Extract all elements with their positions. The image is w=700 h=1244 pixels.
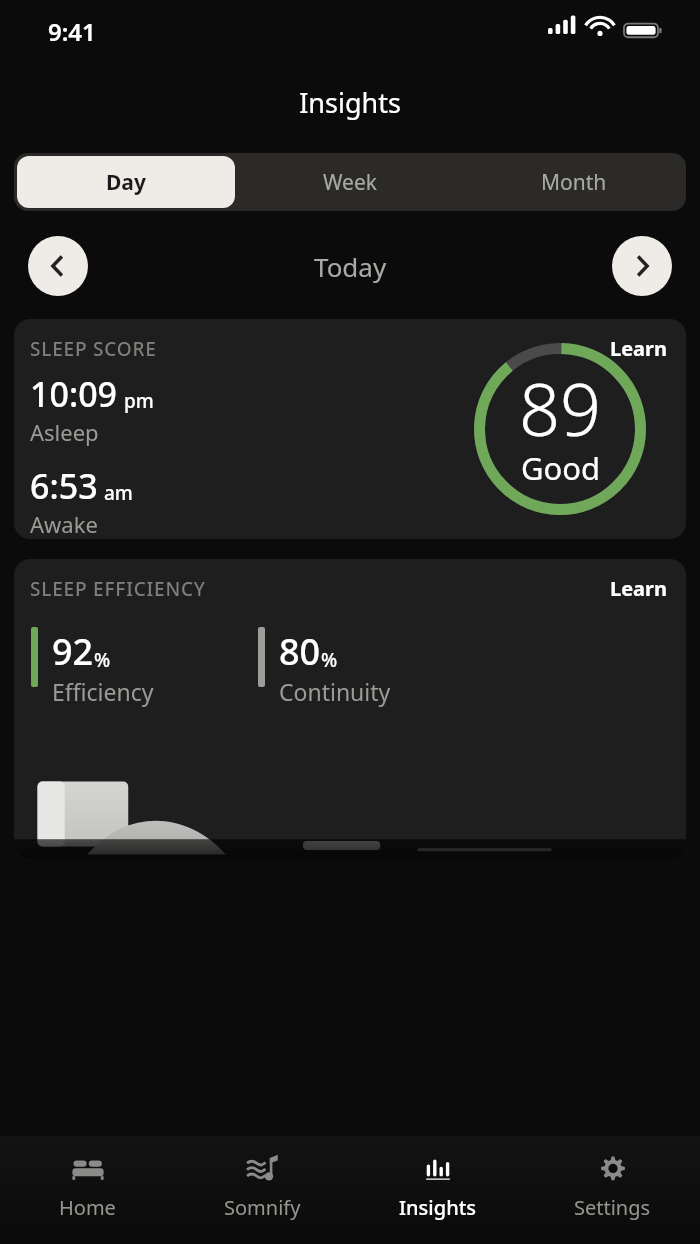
button[interactable]: Settings <box>525 1136 700 1221</box>
staticText: Day <box>106 168 146 197</box>
staticText: Awake <box>30 509 98 539</box>
staticText: Learn <box>610 575 668 602</box>
staticText: Today <box>314 249 387 284</box>
staticText: Somnify <box>224 1194 301 1221</box>
staticText: % <box>321 647 338 673</box>
staticText: Continuity <box>279 676 391 707</box>
button[interactable]: Month <box>465 156 683 208</box>
button[interactable]: Somnify <box>175 1136 350 1221</box>
staticText: Month <box>541 168 607 197</box>
staticText: 92 <box>52 627 94 676</box>
staticText: SLEEP EFFICIENCY <box>30 576 206 602</box>
staticText: Learn <box>610 335 668 362</box>
staticText: pm <box>124 388 154 414</box>
button[interactable]: Learn <box>606 571 672 606</box>
button[interactable]: SLEEP EFFICIENCY <box>14 559 686 859</box>
staticText: Efficiency <box>52 676 154 707</box>
button[interactable]: Insights <box>350 1136 525 1221</box>
staticText: am <box>104 480 133 506</box>
staticText: SLEEP SCORE <box>30 336 157 362</box>
button[interactable]: Next day <box>612 236 672 296</box>
staticText: Week <box>323 168 378 197</box>
staticText: % <box>94 647 111 673</box>
button[interactable]: Day <box>17 156 235 208</box>
staticText: Home <box>59 1194 116 1221</box>
staticText: 89 <box>519 359 602 457</box>
staticText: 6:53 <box>30 463 98 509</box>
staticText: Settings <box>574 1194 651 1221</box>
button[interactable]: Learn <box>606 331 672 366</box>
staticText: Good <box>521 447 601 489</box>
button[interactable]: Week <box>241 156 459 208</box>
staticText: 80 <box>279 627 321 676</box>
staticText: 9:41 <box>48 15 96 48</box>
staticText: Insights <box>0 84 700 121</box>
staticText: Asleep <box>30 417 99 447</box>
button[interactable]: Previous day <box>28 236 88 296</box>
button[interactable]: SLEEP SCORE <box>14 319 686 539</box>
staticText: Insights <box>399 1194 477 1221</box>
button[interactable]: Home <box>0 1136 175 1221</box>
staticText: 10:09 <box>30 371 118 417</box>
